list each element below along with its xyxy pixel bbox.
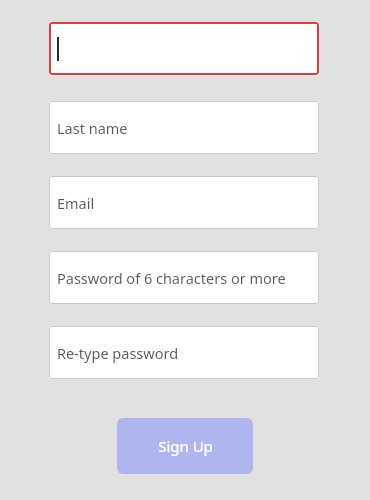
staticText: Last name [57, 118, 128, 138]
staticText: Sign Up [158, 436, 213, 456]
button[interactable]: Sign Up [117, 418, 253, 474]
button[interactable]: Email [49, 176, 319, 229]
button[interactable]: Password of 6 characters or more [49, 251, 319, 304]
staticText: Password of 6 characters or more [57, 268, 286, 288]
button[interactable] [49, 22, 319, 75]
button[interactable]: Last name [49, 101, 319, 154]
staticText: Email [57, 193, 95, 213]
button[interactable]: Re-type password [49, 326, 319, 379]
staticText: Re-type password [57, 343, 179, 363]
